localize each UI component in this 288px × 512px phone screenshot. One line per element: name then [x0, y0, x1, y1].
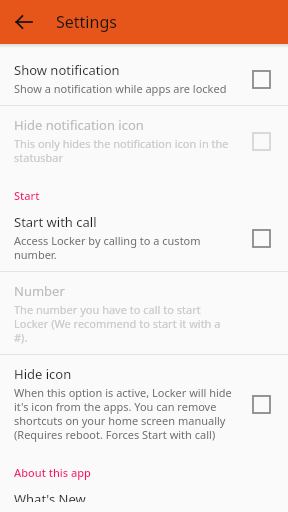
button[interactable]: Hide icon [0, 355, 288, 451]
button[interactable]: Show notification [0, 54, 288, 105]
button[interactable]: Start with call [0, 209, 288, 271]
staticText: This only hides the notification icon in… [14, 136, 236, 165]
staticText: The number you have to call to start Loc… [14, 302, 236, 345]
staticText: When this option is active, Locker will … [14, 385, 236, 442]
button[interactable]: Back [8, 6, 40, 38]
staticText: About this app [14, 465, 91, 480]
button[interactable]: Number [0, 272, 288, 354]
button[interactable]: Toggle [248, 128, 274, 154]
button[interactable]: What's New [0, 484, 288, 512]
button[interactable]: Toggle [248, 391, 274, 417]
button[interactable]: Toggle [248, 225, 274, 251]
staticText: Access Locker by calling to a custom num… [14, 233, 236, 262]
staticText: What's New [14, 490, 86, 502]
staticText: Settings [56, 11, 117, 33]
button[interactable]: Hide notification icon [0, 106, 288, 174]
staticText: Hide notification icon [14, 116, 144, 134]
staticText: Show a notification while apps are locke… [14, 81, 227, 96]
staticText: Show notification [14, 61, 120, 79]
staticText: Start with call [14, 213, 97, 231]
staticText: Number [14, 282, 65, 300]
staticText: Hide icon [14, 365, 72, 383]
staticText: Start [14, 188, 40, 203]
button[interactable]: Toggle [248, 66, 274, 92]
